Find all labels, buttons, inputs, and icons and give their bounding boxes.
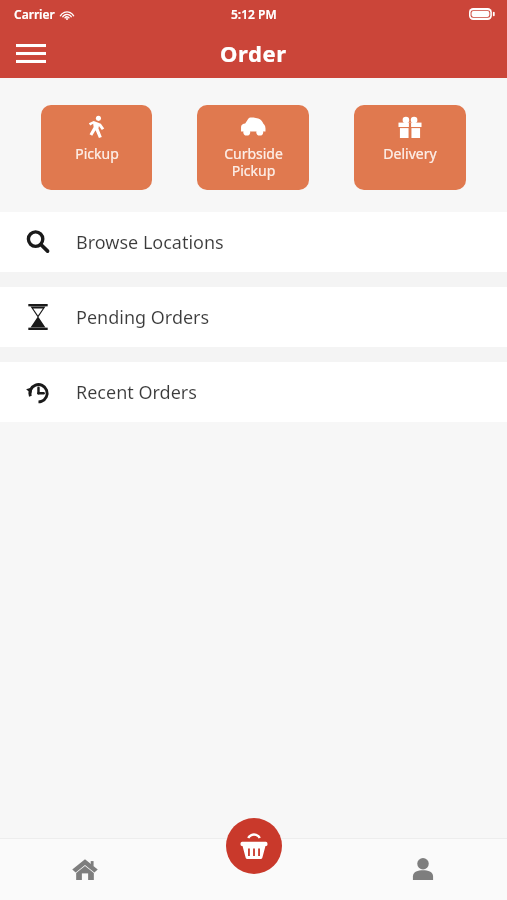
button[interactable]: Browse Locations — [0, 212, 507, 272]
button[interactable]: Pending Orders — [0, 287, 507, 347]
button[interactable]: Profile — [338, 838, 507, 900]
button[interactable]: Cart — [226, 818, 282, 874]
staticText: Browse Locations — [76, 230, 224, 255]
staticText: Recent Orders — [76, 380, 197, 405]
staticText: Order — [220, 38, 287, 68]
button[interactable]: Delivery — [354, 105, 466, 190]
button[interactable]: Menu — [8, 30, 54, 76]
staticText: 5:12 PM — [231, 6, 277, 22]
button[interactable]: Recent Orders — [0, 362, 507, 422]
staticText: Pending Orders — [76, 305, 210, 330]
button[interactable]: Curbside Pickup — [197, 105, 309, 190]
button[interactable]: Pickup — [41, 105, 152, 190]
staticText: Delivery — [383, 144, 437, 163]
staticText: Pickup — [75, 144, 119, 163]
staticText: Carrier — [14, 6, 55, 22]
button[interactable]: Home — [0, 838, 169, 900]
staticText: Curbside Pickup — [224, 144, 283, 180]
